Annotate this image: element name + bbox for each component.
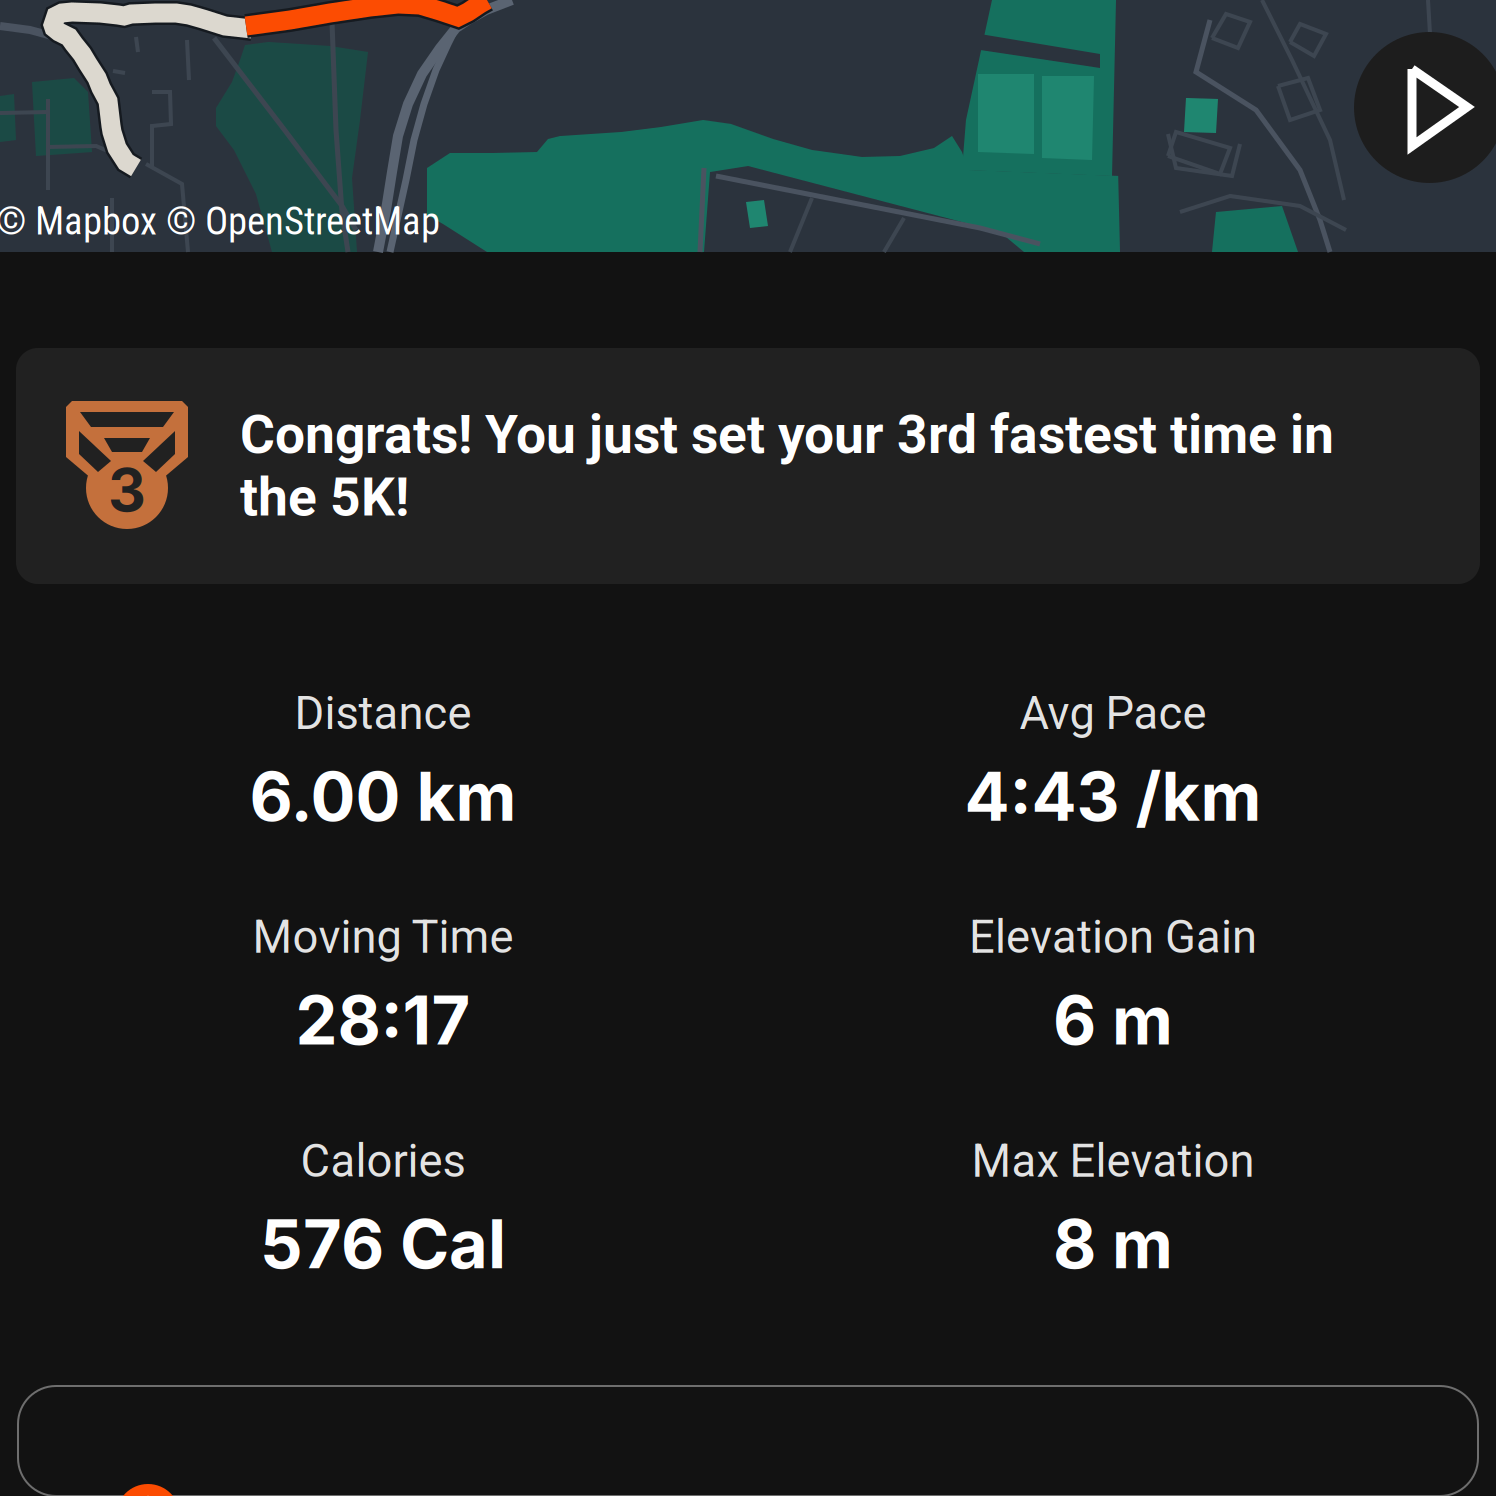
staticText: Congrats! You just set your 3rd fastest … — [240, 403, 1334, 528]
staticText: © Mapbox © OpenStreetMap — [0, 199, 440, 244]
staticText: 576 Cal — [260, 1204, 506, 1284]
staticText: Max Elevation — [971, 1135, 1254, 1188]
staticText: 28:17 — [295, 980, 470, 1061]
staticText: Avg Pace — [1019, 687, 1206, 740]
staticText: Moving Time — [252, 911, 513, 964]
button[interactable]: Play activity — [1354, 32, 1496, 183]
staticText: 3 — [108, 454, 146, 525]
staticText: Elevation Gain — [969, 911, 1257, 964]
staticText: Distance — [294, 687, 471, 740]
staticText: 6.00 km — [249, 756, 516, 837]
staticText: 8 m — [1053, 1204, 1173, 1284]
button[interactable]: 3 — [0, 348, 1496, 584]
staticText: 4:43 /km — [964, 756, 1261, 837]
staticText: 6 m — [1053, 980, 1173, 1061]
button[interactable] — [0, 1386, 1496, 1496]
staticText: Calories — [300, 1135, 465, 1188]
